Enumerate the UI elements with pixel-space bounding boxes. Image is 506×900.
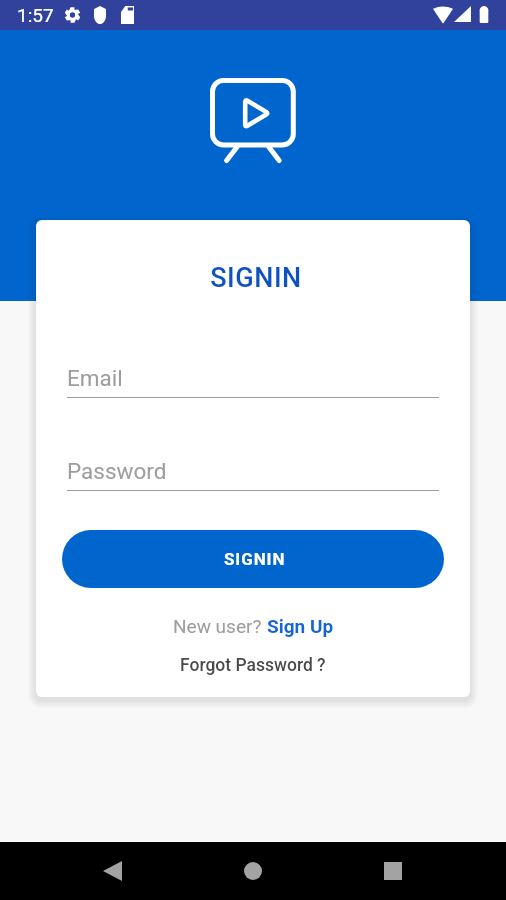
button[interactable]: Email bbox=[67, 365, 439, 398]
button[interactable]: Back bbox=[88, 842, 136, 900]
staticText: 1:57 bbox=[17, 4, 54, 26]
button[interactable]: Password bbox=[67, 458, 439, 491]
staticText: SIGNIN bbox=[224, 549, 286, 569]
staticText: Email bbox=[67, 365, 123, 391]
staticText: SIGNIN bbox=[39, 262, 470, 294]
button[interactable]: Home bbox=[229, 842, 277, 900]
button[interactable]: Forgot Password ? bbox=[36, 655, 470, 676]
button[interactable]: SIGNIN bbox=[62, 530, 444, 588]
staticText: Forgot Password ? bbox=[180, 655, 326, 676]
staticText: New user? bbox=[173, 615, 267, 637]
button[interactable]: Sign Up bbox=[267, 615, 334, 637]
staticText: Sign Up bbox=[267, 615, 334, 637]
staticText: Password bbox=[67, 458, 167, 484]
button[interactable]: Recent apps bbox=[369, 842, 417, 900]
